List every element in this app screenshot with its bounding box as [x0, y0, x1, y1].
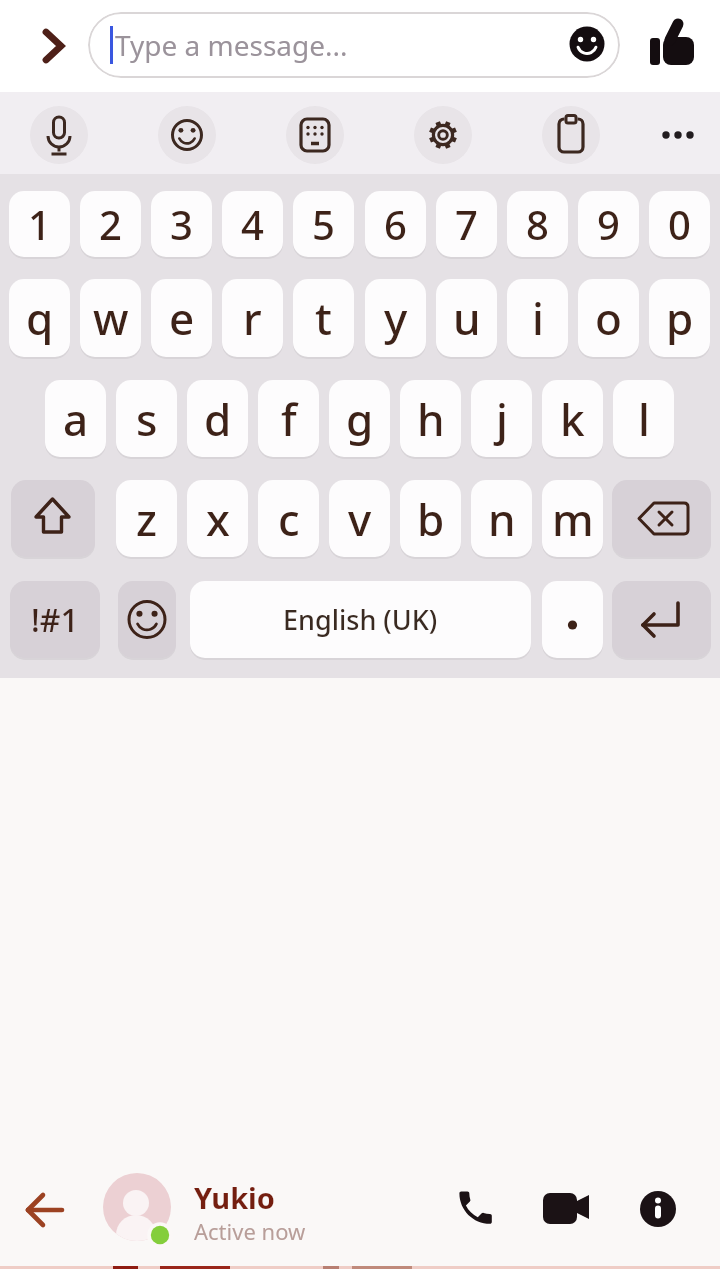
button[interactable]: English (UK): [190, 581, 531, 658]
staticText: l: [638, 389, 650, 449]
staticText: y: [384, 288, 408, 348]
staticText: 5: [312, 197, 335, 251]
button[interactable]: Type a message...: [88, 12, 620, 78]
button[interactable]: [652, 113, 704, 157]
button[interactable]: !#1: [10, 581, 100, 658]
staticText: s: [136, 389, 158, 449]
staticText: g: [346, 389, 374, 449]
button[interactable]: 2: [80, 191, 141, 257]
staticText: t: [315, 288, 332, 348]
button[interactable]: 9: [578, 191, 639, 257]
button[interactable]: [30, 106, 88, 164]
button[interactable]: x: [187, 480, 248, 557]
button[interactable]: e: [151, 279, 212, 357]
staticText: w: [93, 288, 129, 348]
staticText: d: [204, 389, 232, 449]
button[interactable]: [612, 581, 711, 658]
button[interactable]: [639, 1190, 677, 1228]
button[interactable]: [650, 18, 698, 68]
button[interactable]: [414, 106, 472, 164]
staticText: Yukio: [194, 1178, 275, 1212]
button[interactable]: u: [436, 279, 497, 357]
button[interactable]: 5: [293, 191, 354, 257]
button[interactable]: [286, 106, 344, 164]
button[interactable]: [146, 1221, 174, 1249]
button[interactable]: a: [45, 380, 106, 457]
button[interactable]: o: [578, 279, 639, 357]
button[interactable]: [103, 1173, 171, 1241]
staticText: m: [552, 489, 594, 549]
button[interactable]: [542, 106, 600, 164]
button[interactable]: 6: [365, 191, 426, 257]
staticText: q: [26, 288, 54, 348]
button[interactable]: l: [613, 380, 674, 457]
staticText: 3: [170, 197, 193, 251]
staticText: p: [666, 288, 694, 348]
staticText: v: [348, 489, 372, 549]
button[interactable]: [454, 1186, 498, 1230]
staticText: n: [488, 489, 516, 549]
button[interactable]: g: [329, 380, 390, 457]
button[interactable]: q: [9, 279, 70, 357]
button[interactable]: f: [258, 380, 319, 457]
button[interactable]: 8: [507, 191, 568, 257]
button[interactable]: t: [293, 279, 354, 357]
staticText: English (UK): [283, 601, 438, 638]
button[interactable]: p: [649, 279, 710, 357]
button[interactable]: 7: [436, 191, 497, 257]
button[interactable]: [11, 480, 95, 557]
staticText: Type a message...: [115, 26, 348, 64]
staticText: z: [136, 489, 157, 549]
staticText: Active now: [194, 1216, 306, 1244]
button[interactable]: h: [400, 380, 461, 457]
staticText: c: [278, 489, 300, 549]
button[interactable]: r: [222, 279, 283, 357]
button[interactable]: c: [258, 480, 319, 557]
button[interactable]: m: [542, 480, 603, 557]
button[interactable]: [38, 26, 68, 66]
button[interactable]: z: [116, 480, 177, 557]
button[interactable]: [543, 1190, 593, 1228]
button[interactable]: v: [329, 480, 390, 557]
staticText: 9: [597, 197, 620, 251]
staticText: h: [417, 389, 445, 449]
staticText: a: [63, 389, 89, 449]
button[interactable]: s: [116, 380, 177, 457]
button[interactable]: 4: [222, 191, 283, 257]
staticText: e: [169, 288, 195, 348]
staticText: r: [243, 288, 262, 348]
button[interactable]: k: [542, 380, 603, 457]
staticText: 6: [384, 197, 407, 251]
button[interactable]: [542, 581, 603, 658]
staticText: b: [417, 489, 445, 549]
staticText: !#1: [31, 598, 79, 642]
button[interactable]: b: [400, 480, 461, 557]
button[interactable]: n: [471, 480, 532, 557]
button[interactable]: [612, 480, 711, 557]
button[interactable]: 1: [9, 191, 70, 257]
staticText: j: [496, 389, 508, 449]
staticText: f: [281, 389, 297, 449]
button[interactable]: i: [507, 279, 568, 357]
staticText: k: [560, 389, 585, 449]
staticText: 1: [28, 197, 51, 251]
button[interactable]: [158, 106, 216, 164]
staticText: i: [532, 288, 544, 348]
staticText: u: [453, 288, 481, 348]
button[interactable]: y: [365, 279, 426, 357]
button[interactable]: 3: [151, 191, 212, 257]
staticText: 4: [241, 197, 264, 251]
button[interactable]: j: [471, 380, 532, 457]
staticText: 7: [455, 197, 478, 251]
button[interactable]: [24, 1190, 68, 1230]
button[interactable]: w: [80, 279, 141, 357]
button[interactable]: [118, 581, 176, 658]
staticText: x: [206, 489, 230, 549]
staticText: o: [595, 288, 622, 348]
button[interactable]: d: [187, 380, 248, 457]
staticText: 8: [526, 197, 549, 251]
button[interactable]: 0: [649, 191, 710, 257]
staticText: 0: [668, 197, 691, 251]
staticText: 2: [99, 197, 122, 251]
